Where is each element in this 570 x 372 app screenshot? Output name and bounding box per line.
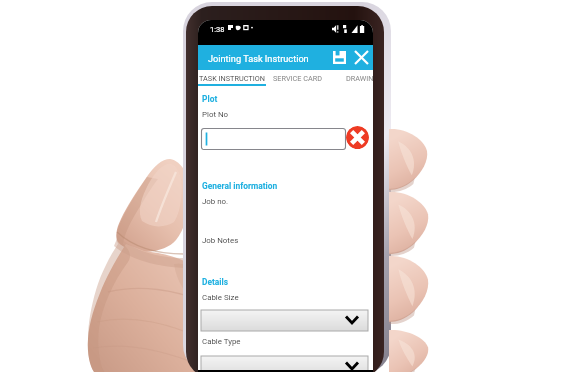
staticText: Job Notes (202, 236, 239, 245)
staticText: Details (202, 277, 229, 287)
staticText: 1:38 (210, 25, 225, 34)
staticText: Jointing Task Instruction (208, 53, 309, 64)
button[interactable]: TASK INSTRUCTION (198, 70, 266, 86)
button[interactable]: Clear (346, 126, 369, 149)
button[interactable] (201, 128, 346, 150)
button[interactable]: Save (328, 45, 350, 70)
button[interactable]: DRAWINGS (346, 70, 373, 86)
staticText: General information (202, 181, 278, 191)
staticText: Job no. (202, 197, 229, 206)
staticText: DRAWINGS (346, 74, 373, 83)
staticText: Plot No (202, 110, 229, 119)
staticText: SERVICE CARD (273, 74, 323, 83)
staticText: Cable Size (202, 293, 239, 302)
staticText: TASK INSTRUCTION (199, 74, 265, 83)
staticText: Cable Type (202, 337, 241, 346)
button[interactable]: Close (350, 45, 372, 70)
button[interactable] (201, 310, 368, 331)
button[interactable] (201, 356, 368, 372)
button[interactable]: SERVICE CARD (272, 70, 324, 86)
staticText: Plot (202, 94, 218, 104)
